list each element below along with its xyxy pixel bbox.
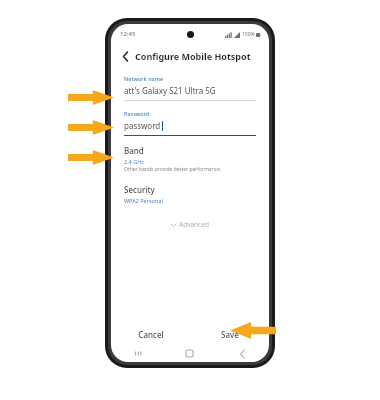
staticText: Save bbox=[221, 329, 239, 340]
staticText: Password bbox=[124, 110, 150, 117]
staticText: Other bands provide better performance bbox=[124, 166, 220, 173]
staticText: password bbox=[124, 120, 161, 131]
button[interactable]: Back bbox=[216, 345, 269, 362]
button[interactable]: Back bbox=[118, 49, 132, 63]
button[interactable]: Recents bbox=[111, 345, 163, 362]
button[interactable]: Password bbox=[111, 110, 269, 136]
button[interactable]: Security bbox=[111, 184, 269, 204]
staticText: Network name bbox=[124, 75, 164, 82]
staticText: Advanced bbox=[179, 220, 209, 229]
button[interactable]: Cancel bbox=[111, 323, 190, 345]
button[interactable]: Save bbox=[190, 323, 269, 345]
staticText: 100% bbox=[242, 31, 255, 38]
staticText: 12:45 bbox=[120, 30, 136, 38]
staticText: Configure Mobile Hotspot bbox=[135, 50, 251, 62]
button[interactable]: Band bbox=[111, 145, 269, 173]
staticText: WPA2 Personal bbox=[124, 197, 163, 204]
staticText: Cancel bbox=[138, 329, 164, 340]
staticText: att's Galaxy S21 Ultra 5G bbox=[124, 85, 216, 96]
button[interactable]: Network name bbox=[111, 75, 269, 101]
staticText: Security bbox=[124, 184, 155, 195]
staticText: Band bbox=[124, 145, 144, 156]
staticText: 2.4 GHz bbox=[124, 158, 144, 165]
button[interactable]: Advanced bbox=[111, 220, 269, 229]
button[interactable]: Home bbox=[163, 345, 216, 362]
